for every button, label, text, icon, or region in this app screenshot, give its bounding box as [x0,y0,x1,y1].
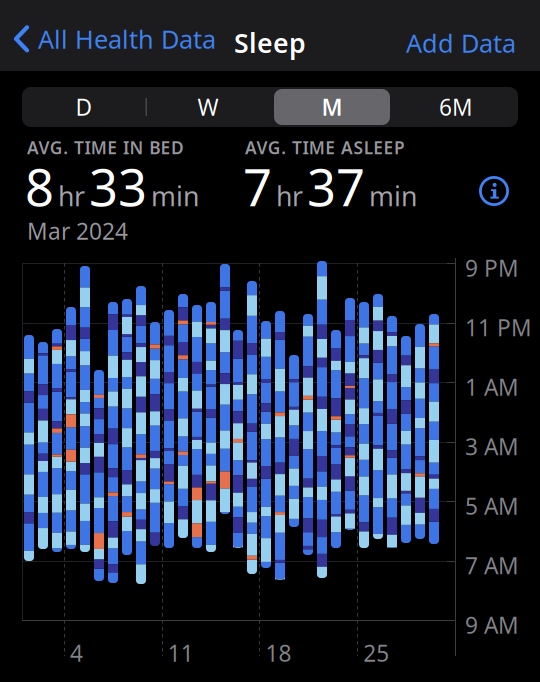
staticText: Add Data [406,26,516,60]
staticText: M [321,92,342,122]
staticText: AVG. TIME IN BED [27,136,184,159]
staticText: 4 [70,638,83,668]
button[interactable]: About Sleep [479,176,509,206]
button[interactable]: W [146,87,270,127]
button[interactable]: All Health Data [14,22,216,56]
button[interactable]: Month [274,89,390,125]
staticText: min [151,178,199,214]
staticText: W [197,92,218,122]
staticText: 7 [243,153,272,220]
staticText: AVG. TIME ASLEEP [245,136,405,159]
staticText: 6M [439,92,473,122]
staticText: 7 AM [465,550,519,581]
staticText: 18 [265,638,291,668]
staticText: 11 PM [465,312,532,343]
staticText: Mar 2024 [27,216,128,246]
staticText: 37 [307,153,365,220]
staticText: 8 [25,153,54,220]
staticText: hr [276,178,303,214]
staticText: Sleep [234,25,306,60]
staticText: D [75,92,92,122]
button[interactable]: 6M [394,87,518,127]
staticText: 3 AM [465,431,519,462]
staticText: 9 AM [465,610,519,640]
staticText: 11 [168,638,194,668]
button[interactable]: M [270,87,394,127]
staticText: min [369,178,417,214]
staticText: hr [58,178,85,214]
staticText: 33 [89,153,147,220]
staticText: 9 PM [465,253,519,283]
staticText: 5 AM [465,491,519,521]
staticText: All Health Data [38,22,216,56]
button[interactable]: D [22,87,146,127]
button[interactable]: Add Data [406,26,516,60]
staticText: 1 AM [465,372,519,402]
staticText: 25 [363,638,389,668]
